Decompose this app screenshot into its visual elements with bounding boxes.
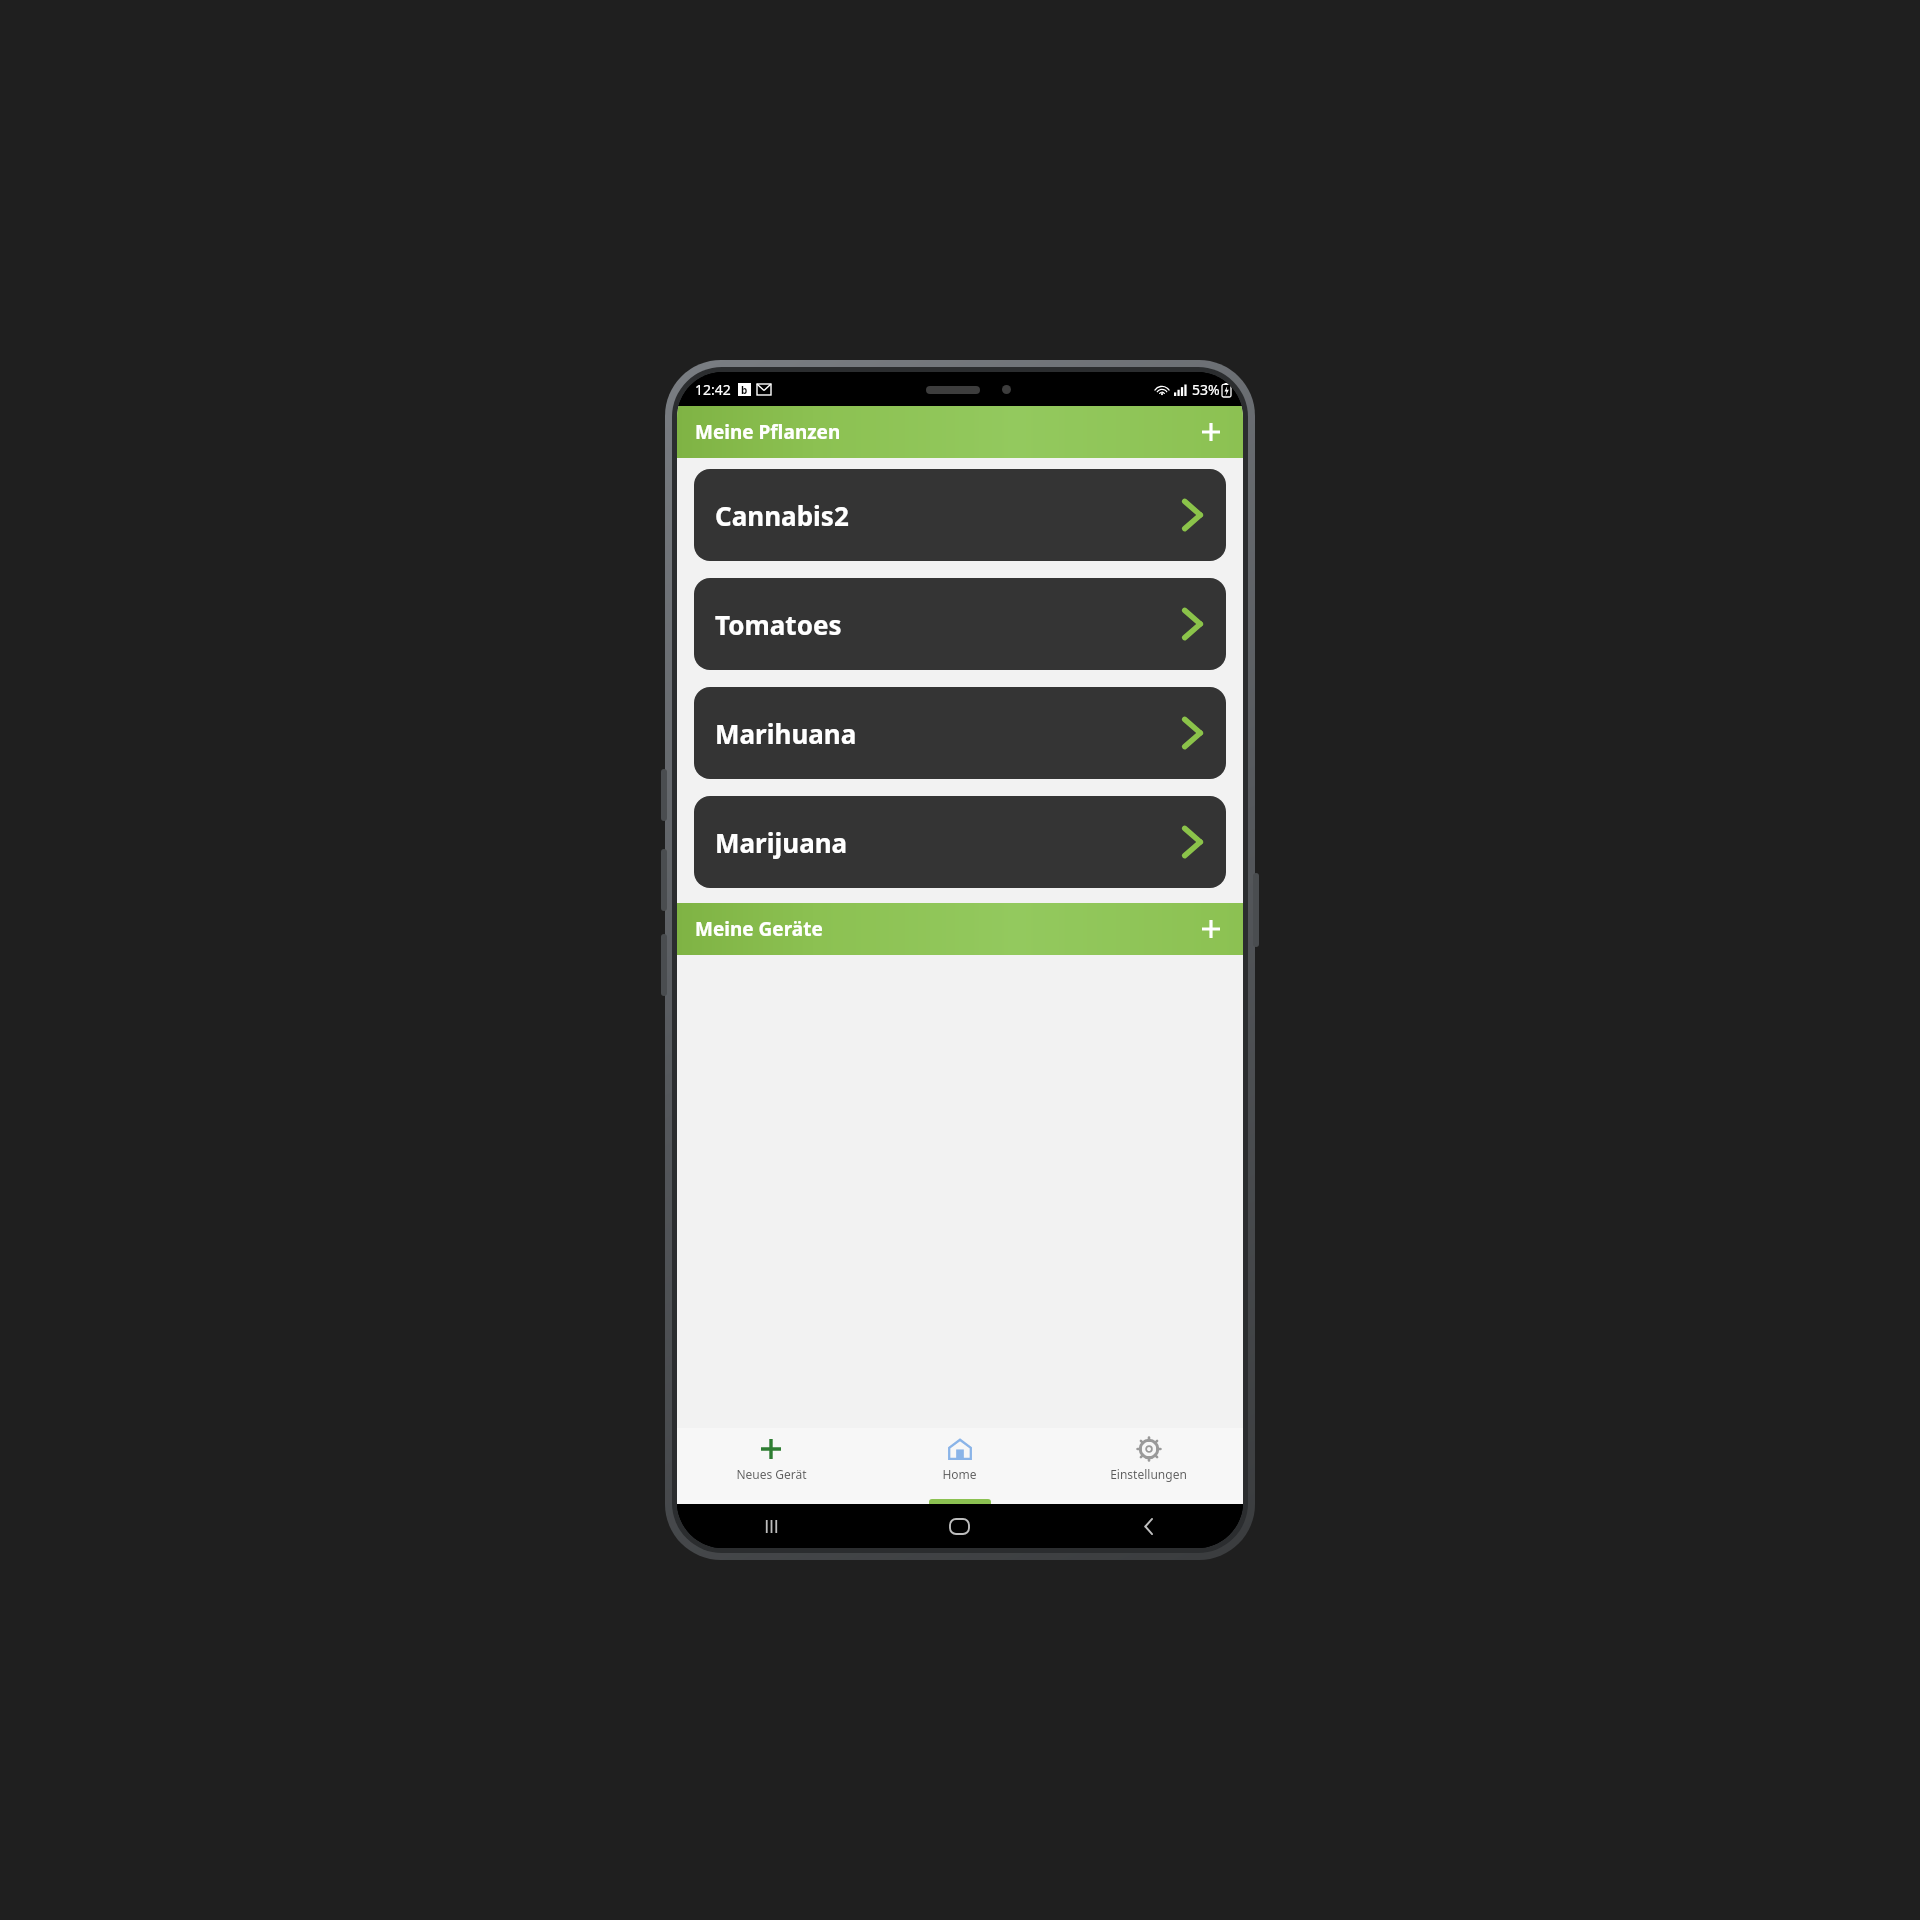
staticText: Cannabis2 [715,498,849,533]
staticText: 53% [1192,380,1220,399]
button[interactable]: Marihuana [694,687,1226,779]
staticText: Marijuana [715,825,848,860]
button[interactable]: Marijuana [694,796,1226,888]
staticText: Einstellungen [1110,1466,1187,1482]
staticText: 12:42 [695,380,731,399]
staticText: Tomatoes [715,607,842,642]
button[interactable]: Einstellungen [1054,1428,1243,1504]
button[interactable]: Hinzufügen [1189,410,1233,454]
staticText: Meine Pflanzen [695,419,841,445]
staticText: Neues Gerät [736,1466,807,1482]
staticText: Home [942,1466,977,1482]
staticText: Meine Geräte [695,916,823,942]
button[interactable]: Hinzufügen [1189,907,1233,951]
button[interactable]: Tomatoes [694,578,1226,670]
button[interactable]: Neues Gerät [677,1428,865,1504]
button[interactable]: Home [865,1428,1054,1504]
button[interactable]: Cannabis2 [694,469,1226,561]
staticText: Marihuana [715,716,857,751]
staticText: b [741,383,748,396]
